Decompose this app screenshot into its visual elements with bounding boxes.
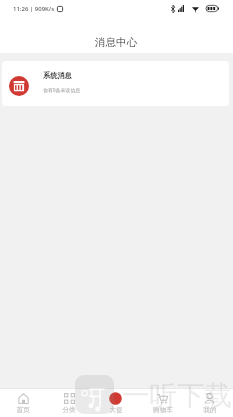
staticText: 大促 (109, 406, 123, 414)
button[interactable]: 我的 (186, 389, 233, 417)
staticText: 消息中心 (95, 36, 138, 49)
button[interactable]: 购物车 (139, 389, 186, 417)
staticText: 分类 (62, 406, 76, 414)
button[interactable]: 分类 (46, 389, 92, 417)
staticText: 11:26 | 909K/s (13, 5, 55, 13)
staticText: 我的 (203, 406, 217, 414)
staticText: 你有0条未读信息 (43, 87, 81, 94)
staticText: 购物车 (153, 406, 173, 414)
staticText: 一听下载 (122, 379, 232, 414)
button[interactable]: 首页 (0, 389, 46, 417)
staticText: 首页 (16, 406, 30, 414)
staticText: 系统消息 (43, 71, 72, 80)
button[interactable]: 大促 (92, 389, 139, 417)
button[interactable]: 系统消息 (2, 61, 229, 106)
